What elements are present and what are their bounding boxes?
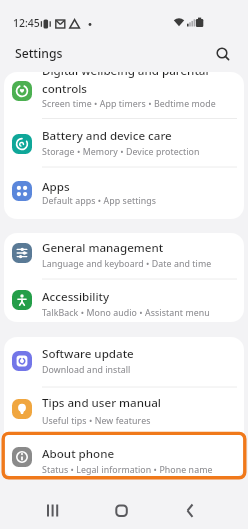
staticText: controls [42,81,88,97]
staticText: Storage • Memory • Device protection [42,146,200,158]
button[interactable] [30,494,66,526]
button[interactable]: Apps [4,167,244,219]
staticText: Battery and device care [42,128,172,144]
button[interactable] [106,494,142,526]
staticText: About phone [42,446,115,462]
staticText: 12:45 [13,16,40,30]
staticText: TalkBack • Mono audio • Assistant menu [42,307,210,319]
button[interactable] [210,41,236,67]
staticText: Screen time • App timers • Bedtime mode [42,98,216,110]
staticText: Accessibility [42,289,110,305]
button[interactable]: Tips and user manual [4,387,244,435]
staticText: Status • Legal information • Phone name [42,464,213,476]
button[interactable]: General management [4,233,244,279]
button[interactable]: Accessibility [4,279,244,322]
staticText: Apps [42,179,70,195]
button[interactable]: Software update [4,337,244,387]
button[interactable]: About phone [4,435,244,478]
staticText: Language and keyboard • Date and time [42,258,212,270]
staticText: Tips and user manual [42,395,161,411]
staticText: Settings [15,45,63,62]
staticText: Default apps • App settings [42,195,157,207]
staticText: Software update [42,346,134,362]
staticText: Useful tips • New features [42,415,151,427]
staticText: Digital wellbeing and parental [42,72,209,79]
button[interactable] [176,494,212,526]
button[interactable]: Digital wellbeing and parental [4,72,244,118]
button[interactable]: Battery and device care [4,119,244,167]
staticText: Download and install [42,364,131,376]
staticText: General management [42,240,164,256]
